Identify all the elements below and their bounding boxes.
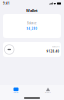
button[interactable]: Apple Card [3, 42, 61, 57]
button[interactable]: Orders [32, 85, 64, 95]
staticText: Balance [27, 21, 37, 25]
staticText: Cards [13, 92, 18, 93]
staticText: $4,280 [26, 27, 37, 30]
staticText: Wallet [26, 8, 38, 13]
staticText: Apple Card [51, 46, 59, 47]
staticText: Orders [45, 92, 51, 93]
staticText: $128.40 [46, 50, 59, 53]
button[interactable]: Cards [0, 85, 32, 95]
button[interactable]: Balance [3, 14, 61, 38]
staticText: 9:41 [3, 2, 10, 5]
